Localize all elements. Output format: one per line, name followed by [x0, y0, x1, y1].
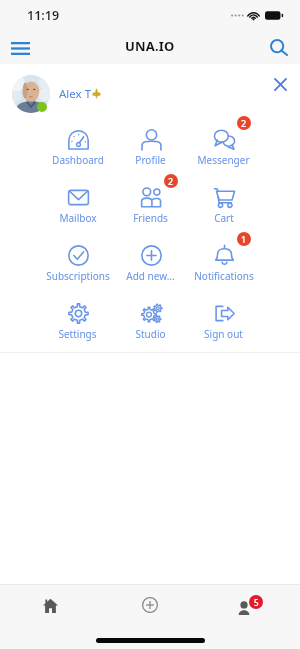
- button[interactable]: Sign out: [187, 298, 260, 353]
- button[interactable]: Menu: [4, 32, 36, 64]
- button[interactable]: Cart: [187, 182, 260, 240]
- staticText: Mailbox: [59, 211, 97, 225]
- button[interactable]: Settings: [41, 298, 114, 353]
- staticText: Dashboard: [52, 153, 104, 167]
- staticText: 2: [241, 117, 247, 129]
- staticText: Notifications: [194, 269, 254, 283]
- button[interactable]: Add new...: [114, 240, 187, 298]
- staticText: Alex T: [59, 86, 92, 102]
- button[interactable]: 1: [187, 240, 260, 298]
- staticText: Studio: [135, 327, 166, 341]
- button[interactable]: Alex T: [12, 75, 101, 113]
- staticText: Add new...: [126, 269, 175, 283]
- button[interactable]: Search: [263, 31, 295, 63]
- staticText: Profile: [135, 153, 166, 167]
- button[interactable]: 2: [187, 124, 260, 182]
- button[interactable]: Studio: [114, 298, 187, 353]
- button[interactable]: Dashboard: [41, 124, 114, 182]
- button[interactable]: Profile: [114, 124, 187, 182]
- button[interactable]: Mailbox: [41, 182, 114, 240]
- button[interactable]: Account: [200, 585, 300, 625]
- staticText: 1: [241, 233, 247, 245]
- staticText: Friends: [133, 211, 168, 225]
- staticText: 11:19: [27, 7, 60, 24]
- staticText: Cart: [214, 211, 234, 225]
- staticText: Messenger: [197, 153, 250, 167]
- staticText: Sign out: [204, 327, 243, 341]
- button[interactable]: 2: [114, 182, 187, 240]
- staticText: 2: [168, 175, 174, 187]
- button[interactable]: Home: [0, 585, 100, 625]
- staticText: Settings: [58, 327, 97, 341]
- button[interactable]: Subscriptions: [41, 240, 114, 298]
- staticText: Subscriptions: [46, 269, 110, 283]
- button[interactable]: Close: [266, 70, 294, 98]
- button[interactable]: Add: [100, 585, 200, 625]
- staticText: 5: [254, 597, 259, 608]
- staticText: UNA.IO: [125, 37, 175, 55]
